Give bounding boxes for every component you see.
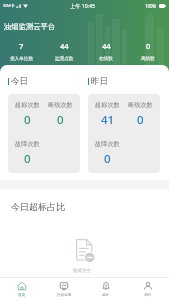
button[interactable]: 我的 (127, 277, 169, 300)
staticText: 0 (146, 41, 151, 51)
staticText: 今日超标占比 (11, 201, 65, 212)
staticText: 0 (137, 112, 144, 128)
staticText: 44 (60, 41, 69, 51)
staticText: 超标次数 (15, 101, 40, 109)
button[interactable]: 44 (43, 41, 85, 62)
staticText: 44 (102, 41, 111, 51)
staticText: 昨日 (91, 76, 109, 87)
staticText: 0 (24, 151, 31, 167)
staticText: 油烟监测云平台 (4, 22, 56, 31)
button[interactable]: 首页 (0, 277, 43, 300)
staticText: 接入单位数 (10, 56, 33, 62)
other: 首页 (17, 281, 27, 291)
button[interactable]: 44 (85, 41, 127, 62)
staticText: SIM卡 (3, 3, 15, 9)
staticText: 超标 (102, 293, 110, 298)
staticText: 上午 10:45 (70, 2, 95, 9)
button[interactable]: 0 (127, 41, 169, 62)
staticText: 7 (19, 41, 24, 51)
staticText: 在线监测 (57, 293, 72, 298)
staticText: 在线数 (99, 56, 113, 62)
staticText: 0 (57, 112, 64, 128)
staticText: 故障次数 (15, 140, 40, 148)
other: 我的 (143, 281, 153, 291)
other: 超标 (101, 281, 111, 291)
staticText: 今日 (11, 76, 29, 87)
staticText: 0 (104, 151, 111, 167)
staticText: 断线次数 (48, 101, 73, 109)
staticText: 离线数 (141, 56, 155, 62)
staticText: 数据为空 (73, 268, 91, 274)
staticText: 首页 (18, 293, 26, 298)
staticText: 故障次数 (95, 140, 120, 148)
button[interactable]: 7 (0, 41, 43, 62)
other: 在线监测 (59, 281, 69, 291)
button[interactable]: 超标 (85, 277, 127, 300)
staticText: 超标次数 (95, 101, 120, 109)
staticText: 监测点数 (55, 56, 74, 62)
staticText: 100% (145, 3, 157, 9)
button[interactable]: 在线监测 (43, 277, 85, 300)
staticText: 0 (24, 112, 31, 128)
staticText: 断线次数 (128, 101, 153, 109)
staticText: 41 (101, 112, 115, 128)
staticText: 我的 (144, 293, 152, 298)
